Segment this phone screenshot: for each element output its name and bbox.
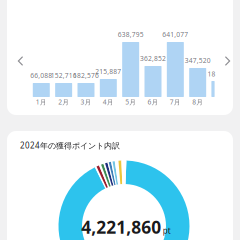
staticText: 5月 (125, 98, 136, 106)
button[interactable]: 次の期間 (214, 46, 240, 76)
staticText: 4,221,860 (81, 215, 161, 238)
staticText: 3月 (80, 98, 91, 106)
staticText: 2024年の獲得ポイント内訳 (20, 140, 120, 151)
button[interactable]: 前の期間 (7, 46, 33, 76)
staticText: 2月 (58, 98, 69, 106)
staticText: pt (163, 225, 171, 236)
staticText: 152,716 (51, 71, 77, 80)
staticText: 6月 (147, 98, 158, 106)
staticText: 4月 (103, 98, 114, 106)
staticText: 362,852 (140, 54, 166, 63)
staticText: 18 (208, 70, 216, 78)
staticText: 7月 (170, 98, 181, 106)
staticText: 641,077 (162, 30, 188, 39)
staticText: 347,520 (185, 56, 211, 65)
staticText: 638,795 (118, 30, 144, 39)
staticText: 215,887 (95, 67, 121, 76)
staticText: 182,576 (73, 71, 99, 80)
staticText: 66,088 (30, 71, 52, 80)
staticText: 8月 (192, 98, 203, 106)
staticText: 1月 (36, 98, 47, 106)
